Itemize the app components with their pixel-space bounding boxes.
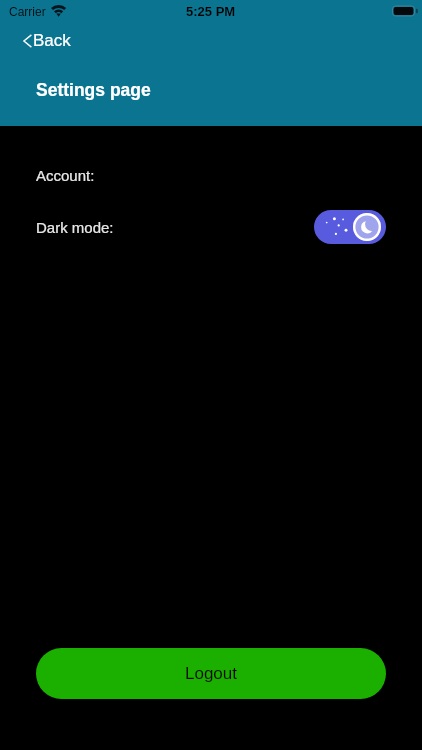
staticText: Carrier xyxy=(9,5,46,18)
staticText: Logout xyxy=(185,664,237,683)
staticText: Back xyxy=(33,31,71,50)
staticText: Settings page xyxy=(36,80,151,100)
staticText: Dark mode: xyxy=(36,219,114,236)
staticText: 5:25 PM xyxy=(186,4,236,19)
staticText: Account: xyxy=(36,167,95,184)
button[interactable]: Logout xyxy=(36,648,386,699)
button[interactable]: Dark mode toggle xyxy=(314,210,386,244)
button[interactable]: Back xyxy=(23,31,71,50)
